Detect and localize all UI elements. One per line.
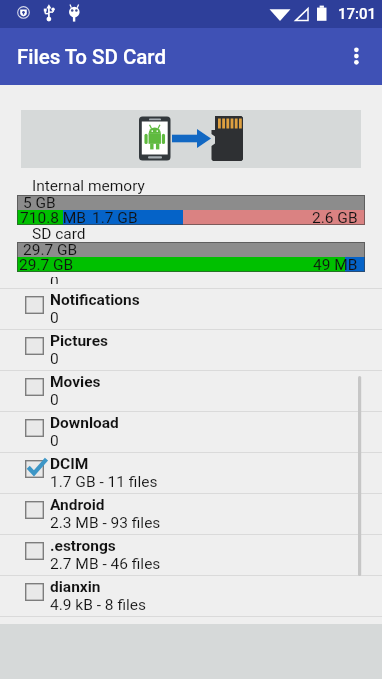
staticText: 1.7 GB bbox=[92, 209, 138, 227]
button[interactable]: Pictures bbox=[0, 330, 382, 370]
staticText: Notifications bbox=[50, 291, 140, 309]
staticText: Download bbox=[50, 414, 119, 432]
staticText: Android bbox=[50, 496, 105, 514]
button[interactable]: DCIM bbox=[0, 453, 382, 493]
button[interactable]: Movies bbox=[0, 371, 382, 411]
button[interactable]: 0 bbox=[0, 277, 382, 288]
button[interactable]: Notifications bbox=[0, 289, 382, 329]
staticText: 710.8 MB bbox=[20, 209, 86, 227]
staticText: Internal memory bbox=[32, 177, 145, 195]
staticText: Files To SD Card bbox=[17, 45, 166, 69]
staticText: 0 bbox=[50, 350, 59, 368]
staticText: 2.7 MB - 46 files bbox=[50, 555, 161, 573]
staticText: 0 bbox=[50, 277, 59, 284]
button[interactable]: .estrongs bbox=[0, 535, 382, 575]
staticText: 5 GB bbox=[23, 194, 56, 212]
staticText: 1.7 GB - 11 files bbox=[50, 473, 158, 491]
staticText: DCIM bbox=[50, 455, 89, 473]
button[interactable]: More options bbox=[334, 28, 382, 85]
staticText: 2.3 MB - 93 files bbox=[50, 514, 161, 532]
staticText: 17:01 bbox=[338, 5, 377, 23]
staticText: 29.7 GB bbox=[23, 241, 78, 259]
button[interactable]: Android bbox=[0, 494, 382, 534]
staticText: 0 bbox=[50, 309, 59, 327]
staticText: 2.6 GB bbox=[312, 209, 358, 227]
staticText: 4.9 kB - 8 files bbox=[50, 596, 146, 614]
staticText: dianxin bbox=[50, 578, 101, 596]
staticText: .estrongs bbox=[50, 537, 116, 555]
staticText: 0 bbox=[50, 391, 59, 409]
staticText: Movies bbox=[50, 373, 101, 391]
staticText: Pictures bbox=[50, 332, 108, 350]
staticText: 0 bbox=[50, 432, 59, 450]
staticText: SD card bbox=[32, 225, 86, 242]
staticText: 29.7 GB bbox=[19, 256, 74, 274]
button[interactable]: dianxin bbox=[0, 576, 382, 616]
staticText: 49 MB bbox=[313, 256, 358, 274]
button[interactable]: Download bbox=[0, 412, 382, 452]
